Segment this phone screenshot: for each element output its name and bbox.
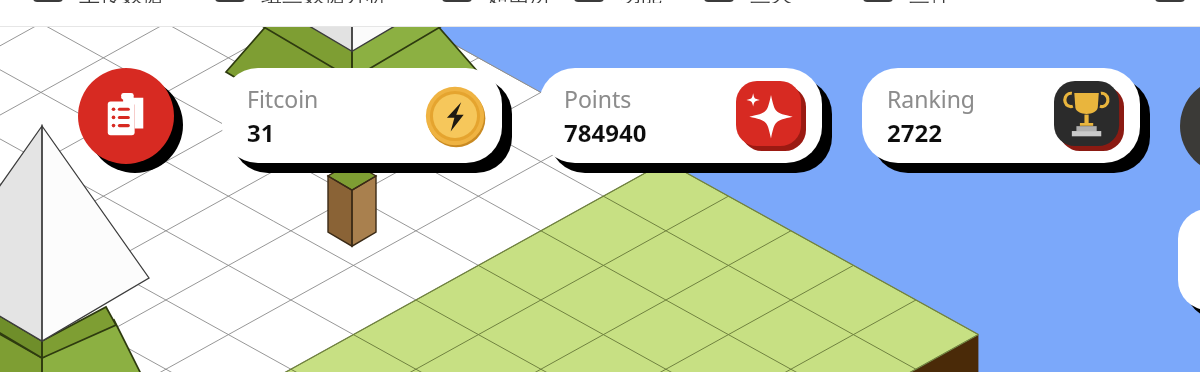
staticText: 三件 xyxy=(909,0,951,3)
staticText: Fitcoin xyxy=(247,83,319,114)
button[interactable]: Fitcoin xyxy=(222,68,502,163)
button[interactable]: 三天 xyxy=(704,0,792,3)
button[interactable]: 组三数据分析 xyxy=(215,0,387,3)
button[interactable]: 功能 xyxy=(574,0,662,3)
staticText: 上传数据 xyxy=(79,0,163,3)
staticText: 组三数据分析 xyxy=(261,0,387,3)
staticText: 784940 xyxy=(564,116,647,149)
button[interactable]: 数据 xyxy=(1155,0,1200,3)
staticText: 超出所 xyxy=(488,0,551,3)
staticText: 功能 xyxy=(620,0,662,3)
staticText: 31 xyxy=(247,116,275,149)
button[interactable]: Tasks xyxy=(78,68,174,164)
button[interactable]: Ranking xyxy=(862,68,1140,163)
button[interactable]: 上传数据 xyxy=(33,0,163,3)
button[interactable]: Points xyxy=(539,68,822,163)
staticText: Points xyxy=(564,83,632,114)
staticText: Ranking xyxy=(887,83,975,114)
button[interactable]: 超出所 xyxy=(442,0,551,3)
button[interactable]: Side panel xyxy=(1178,209,1200,310)
staticText: 三天 xyxy=(750,0,792,3)
button[interactable]: 三件 xyxy=(863,0,951,3)
staticText: 2722 xyxy=(887,116,942,149)
button[interactable]: More options xyxy=(1180,78,1200,174)
